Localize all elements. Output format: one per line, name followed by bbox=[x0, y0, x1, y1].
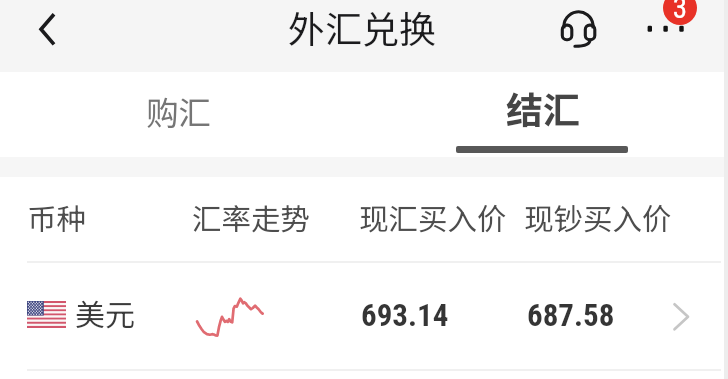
staticText: 币种 bbox=[27, 196, 87, 239]
staticText: 购汇 bbox=[146, 87, 212, 134]
button[interactable]: More options bbox=[638, 0, 704, 72]
staticText: 693.14 bbox=[361, 297, 449, 333]
button[interactable]: Customer service bbox=[552, 0, 606, 72]
staticText: 汇率走势 bbox=[192, 196, 311, 239]
staticText: 外汇兑换 bbox=[288, 0, 436, 54]
button[interactable]: 购汇 bbox=[100, 72, 260, 157]
staticText: 687.58 bbox=[527, 297, 615, 333]
staticText: 结汇 bbox=[506, 81, 580, 135]
button[interactable]: 美元 bbox=[0, 261, 728, 370]
staticText: 美元 bbox=[75, 291, 135, 334]
button[interactable]: Back bbox=[0, 0, 78, 72]
staticText: 现钞买入价 bbox=[524, 196, 672, 239]
button[interactable]: 结汇 bbox=[462, 72, 622, 157]
staticText: 现汇买入价 bbox=[359, 196, 507, 239]
staticText: 3 bbox=[665, 0, 695, 25]
